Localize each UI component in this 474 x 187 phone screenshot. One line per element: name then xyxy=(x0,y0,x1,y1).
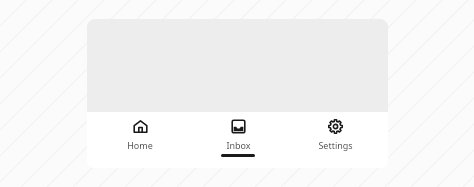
staticText: Home xyxy=(127,139,153,151)
button[interactable]: Settings xyxy=(290,112,380,168)
staticText: Inbox xyxy=(226,139,251,151)
button[interactable]: Home xyxy=(95,112,185,168)
button[interactable]: Inbox xyxy=(193,112,283,168)
staticText: Settings xyxy=(318,139,353,151)
